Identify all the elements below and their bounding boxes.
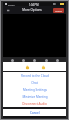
button[interactable]: Meeting Settings	[3, 86, 66, 93]
button[interactable]: Toolbar action 1	[21, 58, 25, 62]
staticText: Cancel	[30, 111, 40, 115]
staticText: Disconnect Audio	[22, 102, 47, 106]
staticText: Meeting Settings	[23, 88, 47, 92]
button[interactable]: Cancel	[3, 109, 66, 116]
staticText: Record to the Cloud	[21, 74, 49, 78]
staticText: Minimize Meeting	[22, 95, 48, 99]
button[interactable]: Toolbar action 0	[10, 58, 14, 62]
button[interactable]: Disconnect Audio	[3, 100, 66, 107]
button[interactable]: Clap reaction	[24, 64, 30, 70]
button[interactable]: Leave	[53, 8, 64, 13]
button[interactable]: Thumbs up reaction	[40, 64, 46, 70]
button[interactable]: Back	[5, 7, 11, 13]
button[interactable]: Toolbar action 2	[32, 58, 36, 62]
button[interactable]: Record to the Cloud	[3, 72, 66, 79]
staticText: More Options	[22, 8, 42, 12]
staticText: Zoom	[8, 3, 15, 6]
button[interactable]: Chat	[3, 79, 66, 86]
button[interactable]: Toolbar action 3	[44, 58, 48, 62]
staticText: Chat	[31, 81, 38, 85]
button[interactable]: Toolbar action 4	[55, 58, 59, 62]
button[interactable]: Minimize Meeting	[3, 93, 66, 100]
staticText: Leave	[55, 9, 62, 12]
staticText: 1:04 PM	[29, 3, 39, 6]
